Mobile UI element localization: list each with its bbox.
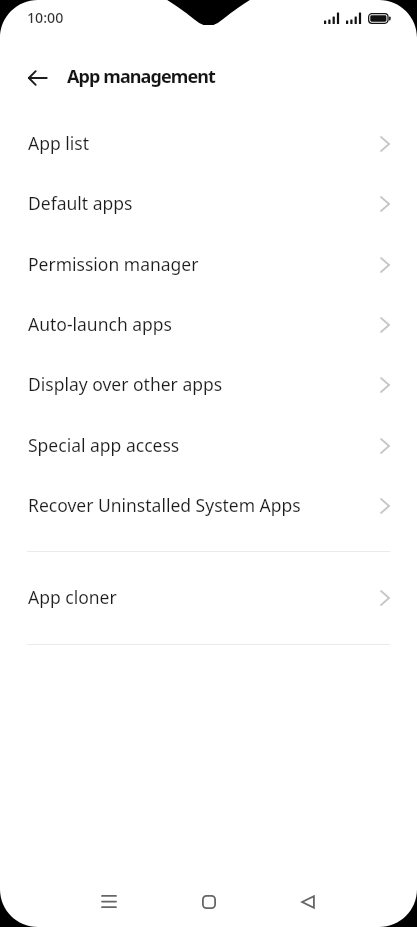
staticText: App list (28, 131, 89, 155)
button[interactable]: Special app access (0, 415, 417, 475)
button[interactable]: App cloner (0, 567, 417, 627)
button[interactable]: Back (286, 880, 330, 924)
staticText: App cloner (28, 585, 117, 609)
staticText: Recover Uninstalled System Apps (28, 493, 301, 517)
button[interactable]: Home (187, 880, 231, 924)
staticText: Default apps (28, 191, 133, 215)
button[interactable]: App list (0, 113, 417, 173)
staticText: Auto-launch apps (28, 312, 172, 336)
button[interactable]: Recover Uninstalled System Apps (0, 475, 417, 535)
staticText: App management (67, 64, 216, 89)
staticText: 10:00 (27, 8, 64, 27)
staticText: Display over other apps (28, 372, 223, 396)
button[interactable]: Default apps (0, 173, 417, 233)
staticText: Permission manager (28, 252, 199, 276)
button[interactable]: Auto-launch apps (0, 294, 417, 354)
staticText: Special app access (28, 433, 180, 457)
button[interactable]: Recent apps (87, 879, 131, 923)
button[interactable]: Display over other apps (0, 354, 417, 414)
button[interactable]: Permission manager (0, 234, 417, 294)
button[interactable]: Back (17, 57, 57, 97)
